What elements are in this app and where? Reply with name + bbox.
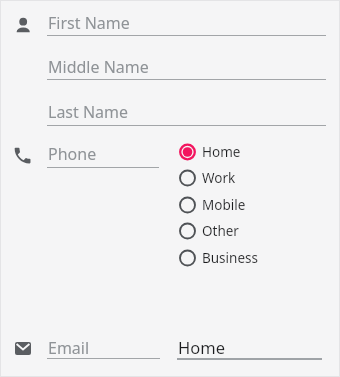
button[interactable] xyxy=(177,335,323,360)
button[interactable]: Home xyxy=(178,139,288,165)
staticText: Middle Name xyxy=(48,56,149,78)
staticText: Home xyxy=(178,336,225,358)
staticText: First Name xyxy=(48,12,130,34)
staticText: Phone xyxy=(48,143,97,165)
staticText: Work xyxy=(202,169,236,187)
button[interactable] xyxy=(47,54,326,80)
staticText: Last Name xyxy=(48,101,129,123)
button[interactable] xyxy=(47,141,159,168)
button[interactable]: Mobile xyxy=(178,192,288,218)
button[interactable]: Business xyxy=(178,245,288,271)
staticText: Home xyxy=(202,143,241,161)
button[interactable]: Other xyxy=(178,218,288,244)
staticText: Other xyxy=(202,222,239,240)
button[interactable] xyxy=(47,336,160,361)
button[interactable] xyxy=(47,10,326,36)
button[interactable] xyxy=(47,99,326,126)
staticText: Mobile xyxy=(202,196,246,214)
button[interactable]: Work xyxy=(178,165,288,191)
staticText: Business xyxy=(202,249,258,267)
staticText: Email xyxy=(48,337,90,359)
